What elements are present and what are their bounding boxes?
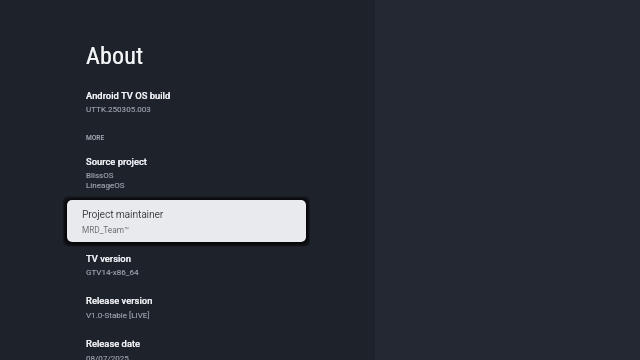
staticText: V1.0-Stable [LIVE] (86, 311, 150, 320)
button[interactable]: Android TV OS build (67, 90, 306, 130)
staticText: Release date (86, 338, 141, 349)
button[interactable]: Project maintainer (67, 200, 306, 242)
button[interactable]: TV version (67, 253, 306, 293)
staticText: BlissOS (86, 171, 114, 180)
staticText: TV version (86, 253, 131, 264)
button[interactable]: Release date (67, 338, 306, 360)
staticText: Source project (86, 156, 147, 167)
button[interactable]: Source project (67, 156, 306, 200)
staticText: 08/07/2025 (86, 354, 129, 360)
staticText: GTV14-x86_64 (86, 268, 139, 277)
staticText: Android TV OS build (86, 90, 171, 101)
staticText: MRD_Team™ (82, 225, 130, 235)
button[interactable]: Release version (67, 295, 306, 335)
staticText: Release version (86, 295, 153, 306)
staticText: About (86, 42, 144, 70)
staticText: MORE (86, 134, 105, 142)
staticText: LineageOS (86, 181, 125, 190)
staticText: Project maintainer (82, 208, 164, 220)
staticText: UTTK.250305.003 (86, 105, 151, 114)
